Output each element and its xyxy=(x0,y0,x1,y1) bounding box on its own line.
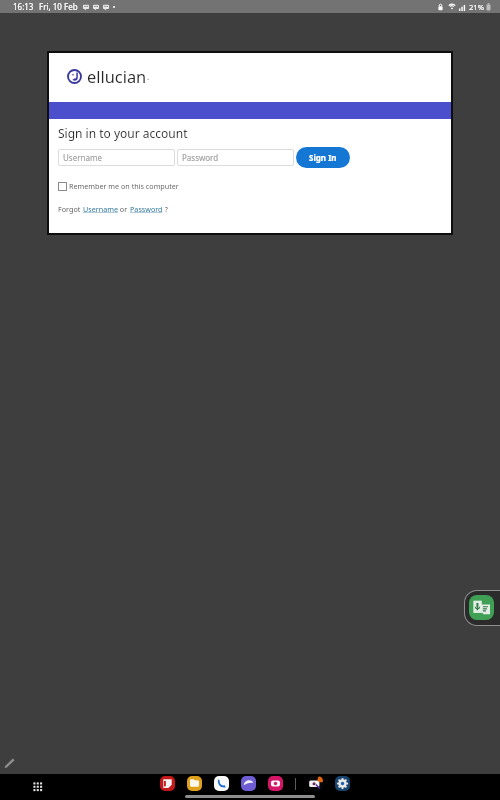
button[interactable]: S Pen xyxy=(1,754,17,770)
staticText: Forgot xyxy=(58,204,83,214)
staticText: Sign In xyxy=(309,152,337,163)
staticText: ellucian xyxy=(87,65,147,87)
button[interactable]: All apps xyxy=(28,774,48,800)
staticText: 21% xyxy=(469,2,484,12)
staticText: Sign in to your account xyxy=(58,125,188,141)
button[interactable]: Internet xyxy=(241,776,256,791)
button[interactable]: Voice recorder xyxy=(465,591,500,625)
staticText: ? xyxy=(163,204,168,214)
staticText: Remember me on this computer xyxy=(69,181,179,191)
button[interactable]: Settings xyxy=(335,776,350,791)
button[interactable]: Files xyxy=(187,776,202,791)
staticText: 16:13 xyxy=(13,1,34,12)
button[interactable]: Phone xyxy=(214,776,229,791)
staticText: Fri, 10 Feb xyxy=(39,1,78,12)
button[interactable]: Password xyxy=(177,149,294,166)
staticText: or xyxy=(118,204,130,214)
button[interactable]: Username xyxy=(83,204,118,214)
staticText: Username xyxy=(63,152,102,163)
button[interactable]: Sign In xyxy=(296,147,350,168)
button[interactable]: Remember me on this computer xyxy=(58,181,179,191)
button[interactable]: Username xyxy=(58,149,175,166)
staticText: Password xyxy=(182,152,219,163)
button[interactable]: Messages xyxy=(160,776,175,791)
button[interactable]: Password xyxy=(130,204,163,214)
button[interactable]: Camera xyxy=(268,776,283,791)
button[interactable]: Recent app xyxy=(308,776,323,791)
staticText: . xyxy=(147,71,150,82)
